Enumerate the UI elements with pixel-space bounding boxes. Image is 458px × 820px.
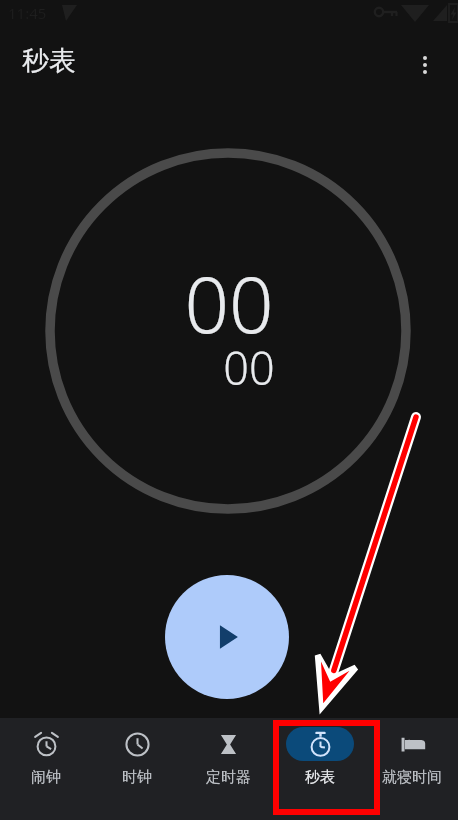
staticText: 时钟 xyxy=(122,768,152,787)
button[interactable]: 秒表 xyxy=(274,718,366,820)
staticText: 闹钟 xyxy=(31,768,61,787)
button[interactable]: Start stopwatch xyxy=(165,575,289,699)
staticText: 就寝时间 xyxy=(382,768,442,787)
staticText: 00 xyxy=(184,250,274,356)
staticText: 秒表 xyxy=(22,44,76,78)
button[interactable]: 就寝时间 xyxy=(366,718,458,820)
button[interactable]: 定时器 xyxy=(182,718,274,820)
staticText: 00 xyxy=(223,337,275,398)
button[interactable]: More options xyxy=(401,41,449,89)
button[interactable]: 时钟 xyxy=(91,718,182,820)
staticText: 秒表 xyxy=(305,768,335,787)
button[interactable]: 闹钟 xyxy=(0,718,91,820)
staticText: 定时器 xyxy=(206,768,251,787)
